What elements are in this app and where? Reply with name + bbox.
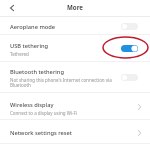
button[interactable]: Network settings reset: [133, 126, 146, 139]
button[interactable]: Wireless display: [133, 100, 146, 113]
button[interactable]: Wireless display: [0, 93, 150, 119]
staticText: Connect to a display using Wi-Fi: [10, 110, 77, 116]
button[interactable]: Bluetooth tethering toggle: [121, 72, 138, 83]
button[interactable]: Aeroplane mode: [0, 17, 150, 34]
staticText: More: [67, 3, 84, 11]
button[interactable]: Network settings reset: [0, 120, 150, 143]
button[interactable]: USB tethering: [0, 35, 150, 61]
staticText: Not sharing this phone's Internet connec…: [10, 77, 120, 89]
staticText: Wireless display: [10, 101, 54, 109]
button[interactable]: Back: [5, 1, 18, 14]
staticText: USB tethering: [10, 42, 49, 50]
button[interactable]: Aeroplane mode toggle: [121, 21, 138, 32]
button[interactable]: USB tethering toggle: [121, 43, 138, 54]
staticText: Tethered: [10, 51, 29, 57]
button[interactable]: Bluetooth tethering: [0, 62, 150, 92]
staticText: Network settings reset: [10, 129, 73, 137]
staticText: Bluetooth tethering: [10, 68, 64, 76]
staticText: Aeroplane mode: [10, 23, 56, 31]
